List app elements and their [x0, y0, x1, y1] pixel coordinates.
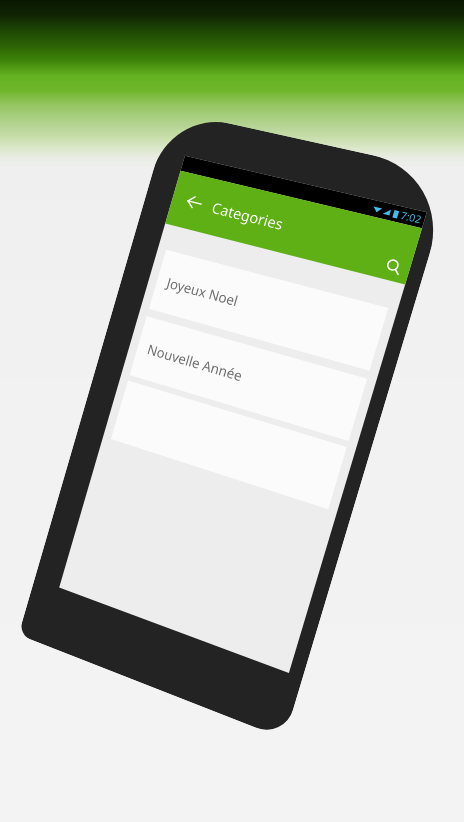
button[interactable]: Back — [183, 191, 206, 214]
button[interactable] — [111, 381, 347, 509]
button[interactable]: Search — [382, 256, 406, 279]
button[interactable]: Nouvelle Année — [130, 316, 367, 441]
staticText: Nouvelle Année — [145, 340, 245, 385]
staticText: Categories — [210, 197, 286, 234]
staticText: 7:02 — [399, 208, 423, 226]
button[interactable]: Joyeux Noel — [149, 250, 388, 371]
staticText: Joyeux Noel — [165, 273, 241, 310]
